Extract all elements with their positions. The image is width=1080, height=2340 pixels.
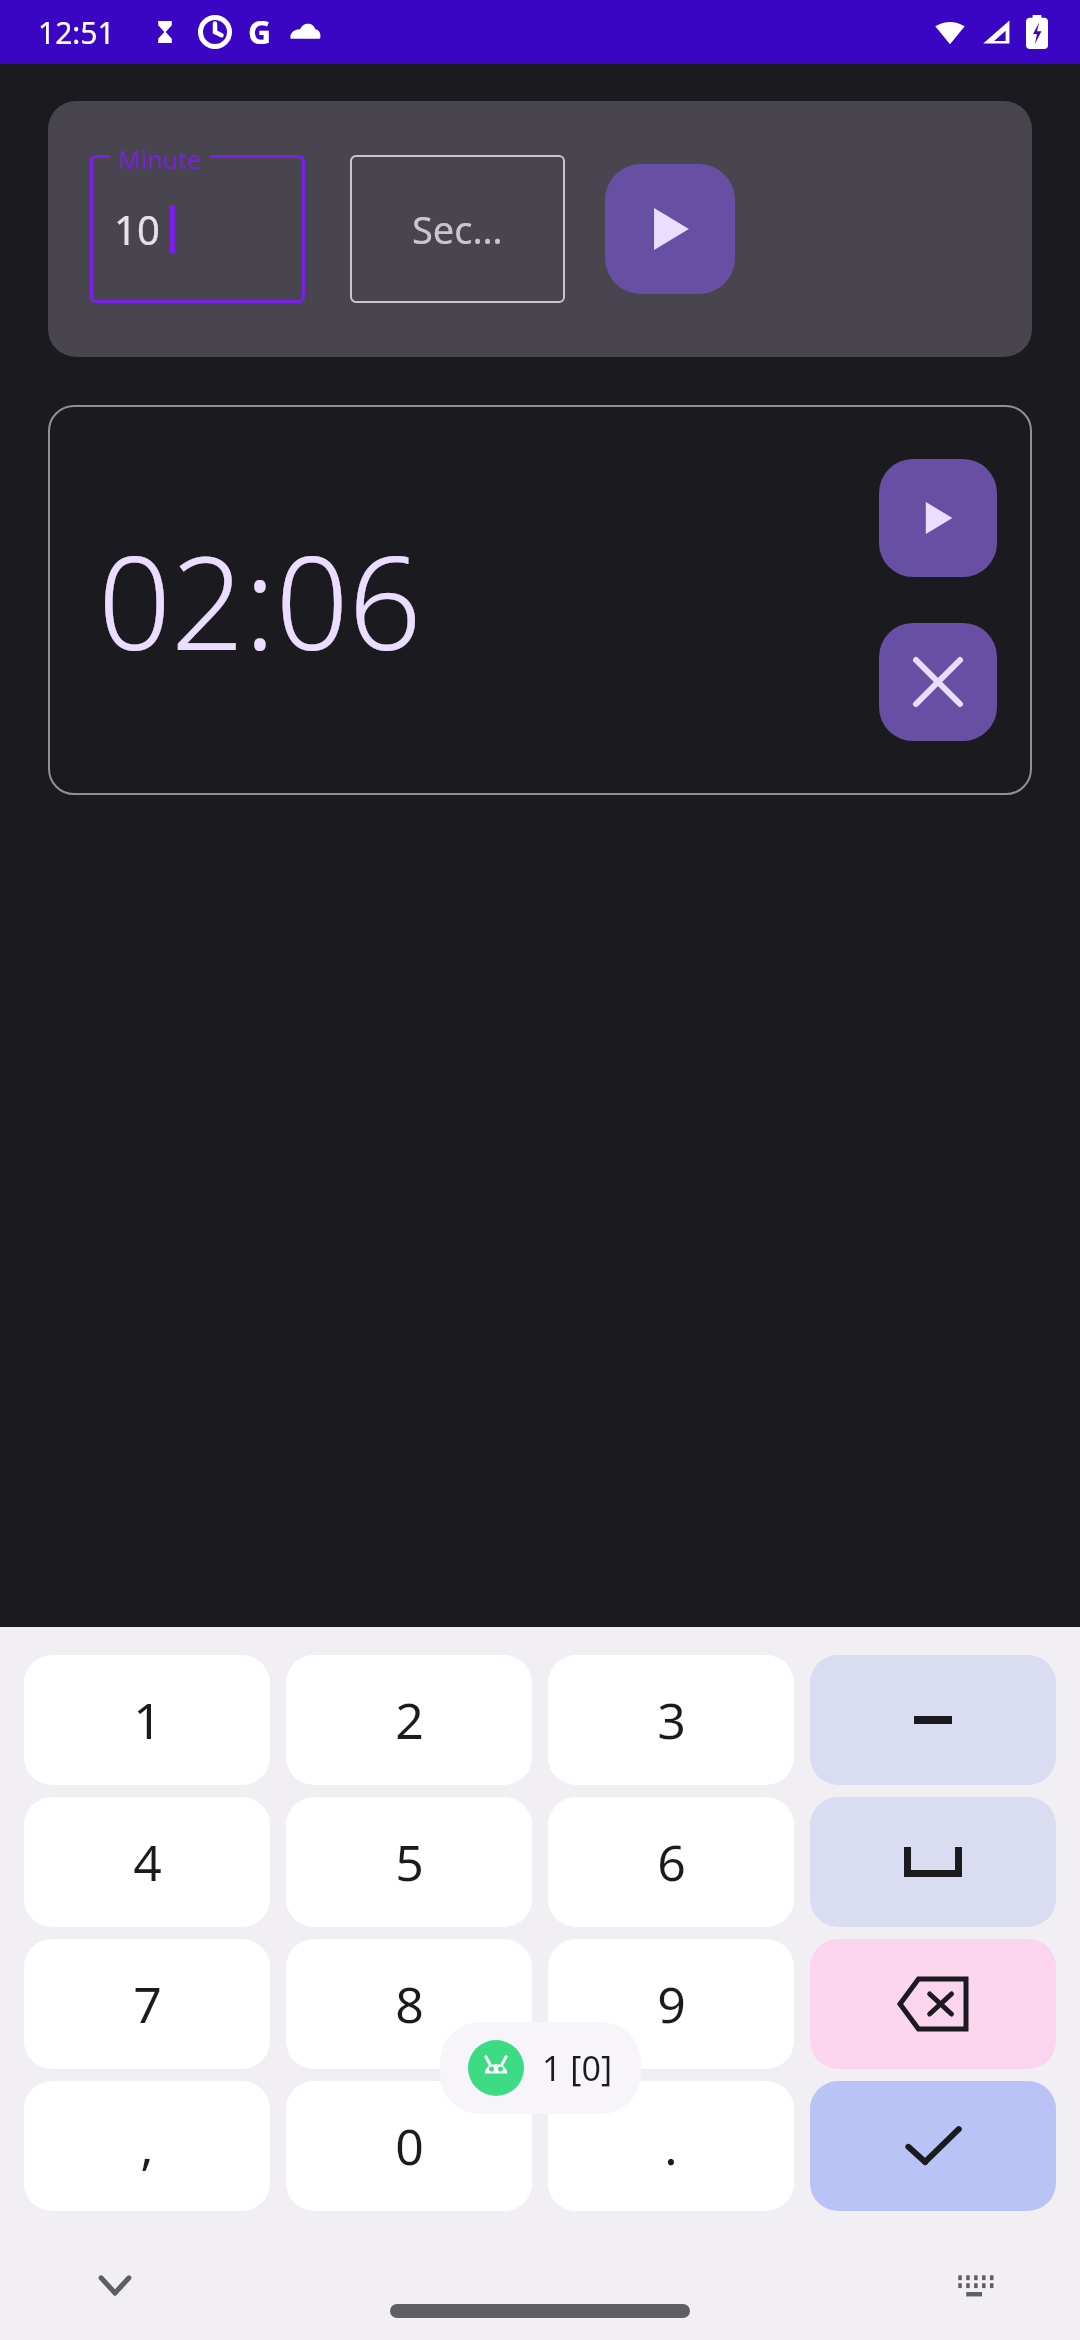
button[interactable]: Resume	[879, 459, 997, 577]
staticText: 5	[395, 1828, 424, 1896]
button[interactable]: 9	[548, 1939, 794, 2069]
staticText: 4	[133, 1828, 162, 1896]
staticText: 10	[114, 202, 160, 256]
staticText: Minute	[118, 142, 202, 176]
button[interactable]: Hide keyboard	[90, 2260, 140, 2310]
staticText: ,	[140, 2112, 154, 2180]
staticText: .	[664, 2112, 678, 2180]
button[interactable]: Cancel	[879, 623, 997, 741]
button[interactable]: Backspace	[810, 1939, 1056, 2069]
staticText: G	[248, 10, 272, 54]
button[interactable]: 4	[24, 1797, 270, 1927]
button[interactable]: Start timer	[605, 164, 735, 294]
staticText: 2	[395, 1686, 424, 1754]
button[interactable]: 7	[24, 1939, 270, 2069]
button[interactable]: 6	[548, 1797, 794, 1927]
staticText: Sec…	[412, 203, 503, 255]
button[interactable]: 3	[548, 1655, 794, 1785]
staticText: 9	[657, 1970, 686, 2038]
button[interactable]: 8	[286, 1939, 532, 2069]
staticText: 1 [0]	[542, 2045, 613, 2091]
button[interactable]: 2	[286, 1655, 532, 1785]
button[interactable]: Minus	[810, 1655, 1056, 1785]
staticText: 02:06	[98, 513, 422, 687]
button[interactable]: Sec…	[350, 155, 565, 303]
button[interactable]: Space	[810, 1797, 1056, 1927]
staticText: 0	[395, 2112, 424, 2180]
button[interactable]: Done	[810, 2081, 1056, 2211]
staticText: 1	[133, 1686, 162, 1754]
staticText: 6	[657, 1828, 686, 1896]
staticText: 12:51	[38, 12, 115, 53]
button[interactable]: .	[548, 2081, 794, 2211]
staticText: 7	[133, 1970, 162, 2038]
button[interactable]: 5	[286, 1797, 532, 1927]
button[interactable]: 10	[90, 155, 305, 303]
button[interactable]: 1	[24, 1655, 270, 1785]
staticText: 8	[395, 1970, 424, 2038]
button[interactable]: ,	[24, 2081, 270, 2211]
button[interactable]: 0	[286, 2081, 532, 2211]
staticText: 3	[657, 1686, 686, 1754]
button[interactable]: Switch keyboard	[950, 2260, 1000, 2310]
